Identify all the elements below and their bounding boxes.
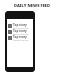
button[interactable]: Top story	[7, 35, 33, 41]
staticText: lorem ipsum	[13, 39, 29, 41]
staticText: lorem ipsum	[13, 33, 29, 35]
staticText: Top story	[13, 35, 27, 39]
staticText: lorem ipsum	[13, 27, 29, 29]
button[interactable]: Top story	[7, 23, 33, 29]
staticText: DAILY NEWS FEED	[0, 3, 64, 8]
staticText: Top story	[13, 29, 27, 33]
button[interactable]: Top story	[7, 29, 33, 35]
staticText: Top story	[13, 23, 27, 27]
